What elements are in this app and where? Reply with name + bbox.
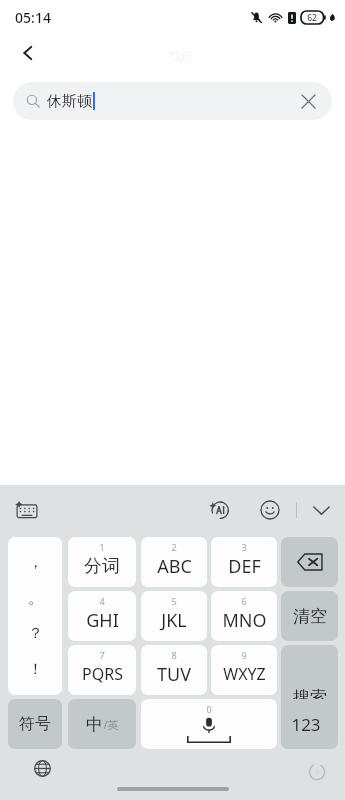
staticText: 1: [99, 541, 105, 553]
staticText: JKL: [161, 608, 187, 633]
staticText: ？: [28, 624, 43, 643]
staticText: 4: [99, 595, 105, 607]
button[interactable]: Delete: [281, 537, 338, 587]
staticText: 05:14: [15, 8, 51, 27]
button[interactable]: Change language: [26, 752, 58, 784]
staticText: ，: [28, 553, 43, 572]
button[interactable]: Voice input settings: [303, 758, 331, 786]
staticText: 8: [171, 649, 177, 661]
staticText: 找房: [169, 48, 193, 63]
button[interactable]: 7: [68, 645, 136, 695]
staticText: ！: [28, 660, 43, 679]
staticText: 3: [241, 541, 247, 553]
button[interactable]: 5: [141, 591, 207, 641]
button[interactable]: 123: [281, 699, 331, 749]
staticText: 中: [86, 714, 103, 735]
staticText: TUV: [157, 662, 191, 687]
staticText: 5: [171, 595, 177, 607]
staticText: 7: [99, 649, 105, 661]
button[interactable]: ，: [8, 537, 62, 695]
staticText: WXYZ: [223, 663, 266, 685]
staticText: ABC: [157, 554, 192, 579]
button[interactable]: 4: [68, 591, 136, 641]
staticText: DEF: [228, 554, 261, 579]
staticText: 搜索: [293, 687, 327, 708]
button[interactable]: Emoji: [252, 492, 288, 528]
button[interactable]: Space: [141, 699, 277, 749]
button[interactable]: Clear: [290, 83, 326, 119]
staticText: 6: [241, 595, 247, 607]
button[interactable]: 1: [68, 537, 136, 587]
staticText: 2: [171, 541, 177, 553]
staticText: 62: [307, 12, 317, 24]
button[interactable]: Keyboard settings: [8, 491, 46, 529]
button[interactable]: 符号: [8, 699, 62, 749]
staticText: 。: [28, 589, 43, 608]
staticText: 符号: [19, 714, 51, 734]
button[interactable]: 清空: [281, 591, 338, 641]
button[interactable]: 搜索: [281, 645, 338, 749]
staticText: /英: [103, 717, 119, 732]
button[interactable]: 9: [211, 645, 277, 695]
button[interactable]: AI assistant: [202, 492, 238, 528]
button[interactable]: Hide keyboard: [303, 492, 339, 528]
button[interactable]: 2: [141, 537, 207, 587]
staticText: GHI: [86, 608, 119, 633]
staticText: 9: [241, 649, 247, 661]
button[interactable]: 中: [68, 699, 136, 749]
button[interactable]: 休斯顿: [13, 82, 332, 120]
staticText: 0: [206, 703, 212, 715]
button[interactable]: Back: [8, 34, 48, 72]
staticText: 清空: [293, 606, 327, 627]
button[interactable]: 8: [141, 645, 207, 695]
staticText: MNO: [222, 608, 267, 633]
staticText: PQRS: [82, 663, 123, 685]
button[interactable]: 6: [211, 591, 277, 641]
staticText: 分词: [84, 555, 120, 578]
staticText: 123: [291, 713, 321, 736]
button[interactable]: 3: [211, 537, 277, 587]
staticText: 休斯顿: [47, 92, 92, 111]
